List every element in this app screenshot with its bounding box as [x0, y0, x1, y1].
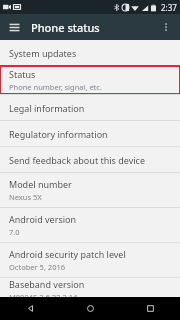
staticText: M8994F-2.6.33.2.14 [9, 292, 78, 297]
staticText: 7.0 [9, 227, 20, 237]
staticText: Android version [9, 213, 77, 225]
button[interactable]: Regulatory information [0, 121, 180, 146]
button[interactable]: Baseband version [0, 278, 180, 297]
button[interactable]: System updates [0, 40, 180, 65]
staticText: 2:37 [161, 2, 177, 13]
staticText: Baseband version [9, 278, 85, 290]
button[interactable]: Legal information [0, 95, 180, 120]
button[interactable]: Open navigation drawer [4, 17, 24, 37]
staticText: Status [9, 68, 36, 80]
button[interactable]: Back [0, 297, 60, 320]
button[interactable]: Status [0, 66, 180, 94]
button[interactable]: Android security patch level [0, 243, 180, 277]
staticText: Model number [9, 178, 72, 190]
staticText: Phone number, signal, etc. [9, 82, 102, 92]
staticText: Legal information [9, 102, 85, 114]
button[interactable]: Model number [0, 173, 180, 207]
staticText: Android security patch level [9, 248, 126, 260]
staticText: System updates [9, 47, 77, 59]
button[interactable]: Recent apps [120, 297, 180, 320]
staticText: Regulatory information [9, 128, 108, 140]
staticText: Phone status [31, 20, 100, 35]
button[interactable]: Home [60, 297, 120, 320]
button[interactable]: Android version [0, 208, 180, 242]
staticText: Nexus 5X [9, 192, 42, 202]
staticText: October 5, 2016 [9, 262, 66, 272]
button[interactable]: More options [156, 17, 176, 37]
button[interactable]: Send feedback about this device [0, 147, 180, 172]
staticText: Send feedback about this device [9, 154, 145, 166]
